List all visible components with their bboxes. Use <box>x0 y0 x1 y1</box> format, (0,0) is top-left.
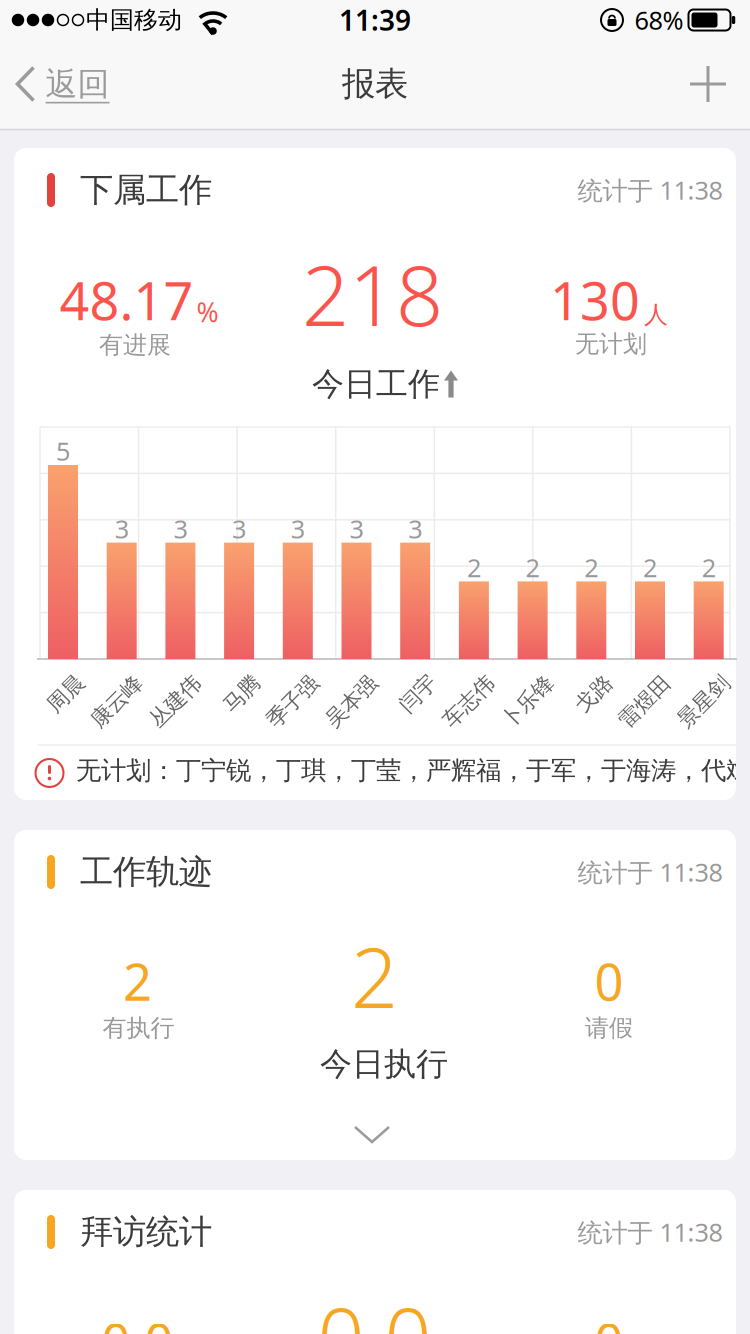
staticText: 丛建伟 <box>144 688 207 715</box>
staticText: 请假 <box>585 1013 633 1043</box>
staticText: 2 <box>467 551 481 584</box>
staticText: 人 <box>644 300 668 329</box>
staticText: 无计划：丁宁锐，丁琪，丁莹，严辉福，于军，于海涛，代斌 <box>76 755 750 786</box>
staticText: 有执行 <box>102 1013 174 1043</box>
staticText: 2 <box>643 551 657 584</box>
staticText: 3 <box>408 512 422 545</box>
staticText: 2 <box>584 551 598 584</box>
staticText: 3 <box>232 512 246 545</box>
staticText: 130 <box>550 265 640 335</box>
staticText: 0 <box>594 1307 623 1334</box>
staticText: 3 <box>349 512 363 545</box>
staticText: 报表 <box>342 63 408 104</box>
staticText: 2 <box>351 921 398 1031</box>
staticText: 周晨 <box>45 681 87 707</box>
staticText: 吴本强 <box>320 688 383 715</box>
staticText: 2 <box>702 551 716 584</box>
staticText: 统计于 11:38 <box>577 855 722 889</box>
staticText: 中国移动 <box>86 5 182 35</box>
staticText: 11:39 <box>339 1 411 39</box>
staticText: 下属工作 <box>80 169 212 210</box>
staticText: 0 <box>594 947 623 1015</box>
staticText: 车志伟 <box>437 688 500 715</box>
staticText: 拜访统计 <box>80 1211 212 1252</box>
staticText: 景星剑 <box>672 688 735 715</box>
staticText: 季子强 <box>261 688 324 715</box>
staticText: 2 <box>526 551 540 584</box>
staticText: 48.17 <box>59 265 193 335</box>
staticText: 马腾 <box>221 681 263 707</box>
staticText: 3 <box>115 512 129 545</box>
staticText: 今日工作 <box>312 364 440 404</box>
staticText: 康云峰 <box>85 688 148 715</box>
staticText: 5 <box>56 434 70 468</box>
staticText: 2 <box>123 947 152 1015</box>
staticText: 68% <box>634 3 683 37</box>
staticText: % <box>196 294 218 329</box>
staticText: 3 <box>173 512 187 545</box>
staticText: 218 <box>302 239 443 349</box>
staticText: 无计划 <box>575 329 647 359</box>
staticText: 0.0 <box>317 1281 431 1334</box>
staticText: 工作轨迹 <box>80 851 212 892</box>
staticText: 统计于 11:38 <box>577 1215 722 1249</box>
staticText: 统计于 11:38 <box>577 173 722 207</box>
staticText: 戈路 <box>573 681 615 707</box>
staticText: 3 <box>291 512 305 545</box>
staticText: 返回 <box>45 64 109 104</box>
staticText: 0.0 <box>101 1307 173 1334</box>
button[interactable]: 返回 <box>14 64 109 104</box>
staticText: 有进展 <box>99 330 171 360</box>
staticText: 卜乐锋 <box>496 688 559 715</box>
staticText: 闫宇 <box>397 681 439 707</box>
staticText: 雷煜田 <box>613 688 676 715</box>
button[interactable]: 添加 <box>678 54 738 114</box>
staticText: 今日执行 <box>320 1044 448 1084</box>
button[interactable]: 展开 <box>327 1115 417 1155</box>
